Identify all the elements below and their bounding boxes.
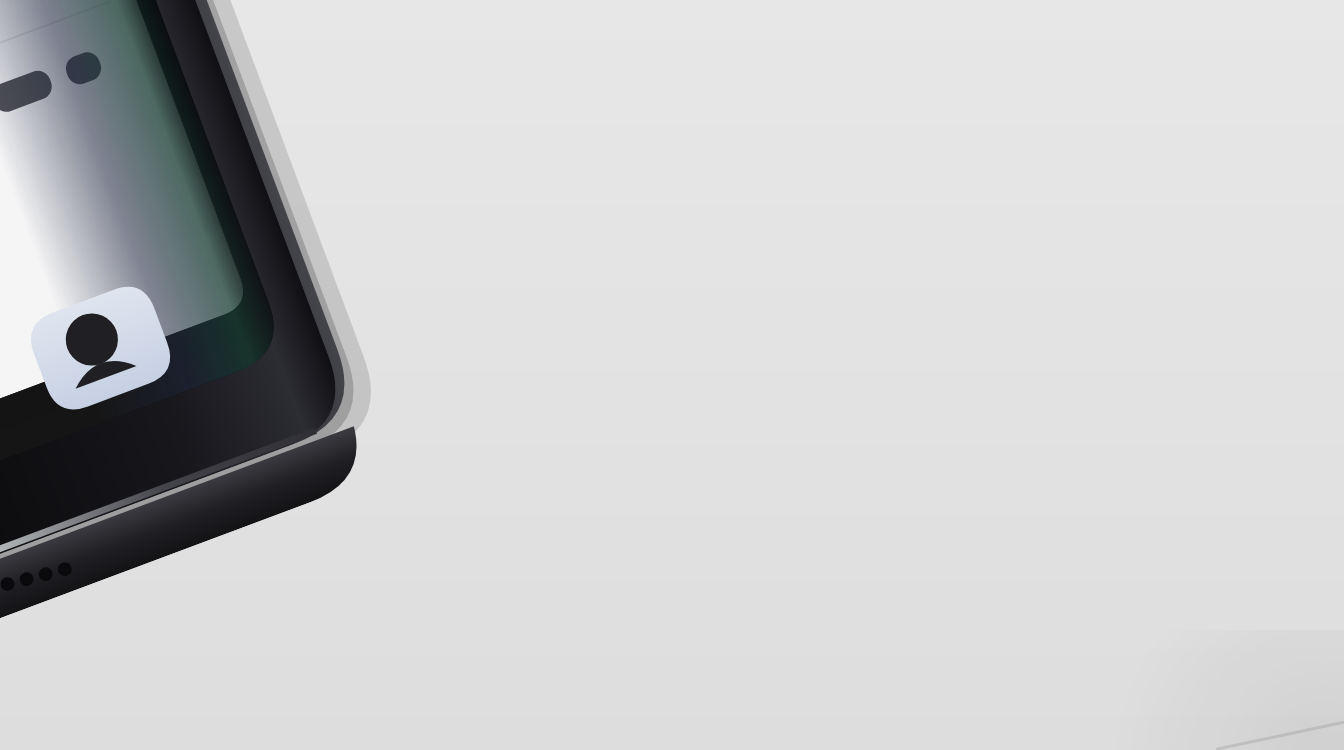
button[interactable]: Phone showing app screen [0, 0, 1344, 750]
